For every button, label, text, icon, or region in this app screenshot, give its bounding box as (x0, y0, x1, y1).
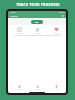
button[interactable]: Activity (29, 85, 45, 90)
button[interactable]: Heart (48, 27, 64, 34)
staticText: TRACK YOUR PROGRESS (16, 2, 60, 7)
button[interactable]: Steps (11, 27, 27, 34)
button[interactable]: GO (31, 20, 43, 24)
button[interactable]: Water (29, 27, 45, 34)
button[interactable]: Profile (48, 85, 64, 90)
staticText: GO (35, 21, 39, 24)
button[interactable]: Home (11, 85, 27, 90)
